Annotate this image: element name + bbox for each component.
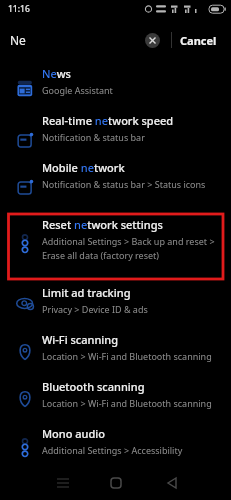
staticText: Limit ad tracking — [42, 285, 131, 300]
staticText: Reset network settings — [42, 217, 163, 232]
staticText: Location > Wi-Fi and Bluetooth scanning — [42, 350, 212, 362]
button[interactable]: Wi-Fi scanning — [0, 328, 231, 375]
button[interactable]: Mobile network — [0, 156, 231, 203]
staticText: Mobile network — [42, 160, 125, 175]
staticText: Google Assistant — [42, 84, 113, 96]
staticText: Bluetooth scanning — [42, 379, 145, 394]
button[interactable] — [154, 469, 231, 500]
staticText: Ne — [10, 32, 26, 48]
button[interactable] — [77, 469, 154, 500]
staticText: Notification & status bar — [42, 131, 145, 143]
staticText: News — [42, 66, 71, 81]
staticText: Mono audio — [42, 426, 105, 441]
staticText: Real-time network speed — [42, 113, 174, 128]
button[interactable]: News — [0, 62, 231, 109]
staticText: Additional Settings > Back up and reset … — [42, 235, 215, 262]
button[interactable] — [145, 33, 160, 48]
button[interactable]: Real-time network speed — [0, 109, 231, 156]
staticText: Notification & status bar > Status icons — [42, 178, 206, 190]
button[interactable]: Cancel — [180, 33, 217, 48]
staticText: Additional Settings > Accessibility — [42, 444, 183, 456]
staticText: Cancel — [180, 33, 217, 48]
button[interactable]: Reset network settings — [0, 203, 231, 281]
staticText: Wi-Fi scanning — [42, 332, 119, 347]
button[interactable]: Limit ad tracking — [0, 281, 231, 328]
staticText: Location > Wi-Fi and Bluetooth scanning — [42, 397, 212, 409]
button[interactable] — [0, 469, 77, 500]
staticText: 11:16 — [8, 3, 30, 15]
staticText: Privacy > Device ID & ads — [42, 303, 148, 315]
button[interactable]: Bluetooth scanning — [0, 375, 231, 422]
button[interactable]: Mono audio — [0, 422, 231, 469]
